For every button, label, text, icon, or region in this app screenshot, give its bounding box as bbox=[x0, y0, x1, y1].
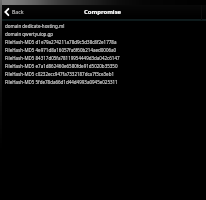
button[interactable]: domain qwertyuiop.gp bbox=[0, 30, 206, 38]
button[interactable]: FileHash-MD5 d1e79a274211a78d9c5d38c8f2e… bbox=[0, 38, 206, 46]
staticText: domain qwertyuiop.gp bbox=[5, 31, 54, 37]
button[interactable]: FileHash-MD5 4e971d8a16057fa6f60b214aed0… bbox=[0, 46, 206, 54]
staticText: FileHash-MD5 4e971d8a16057fa6f60b214aed0… bbox=[5, 47, 117, 53]
staticText: FileHash-MD5 5fde78da66d1d44d4993a0945e0… bbox=[5, 79, 118, 85]
staticText: domain dedicate-hosting.ml bbox=[5, 23, 65, 29]
button[interactable]: Back bbox=[4, 6, 24, 18]
staticText: Compromise bbox=[84, 8, 122, 16]
button[interactable]: domain dedicate-hosting.ml bbox=[0, 22, 206, 30]
button[interactable]: FileHash-MD5 c0232ecc947fa7332187dca7f3c… bbox=[0, 70, 206, 78]
staticText: FileHash-MD5 d1e79a274211a78d9c5d38c8f2e… bbox=[5, 39, 117, 45]
staticText: FileHash-MD5 84317d05fa78119954449d3da04… bbox=[5, 55, 120, 61]
button[interactable]: FileHash-MD5 84317d05fa78119954449d3da04… bbox=[0, 54, 206, 62]
button[interactable]: FileHash-MD5 e7a1d862460e6580fde91d5020b… bbox=[0, 62, 206, 70]
staticText: FileHash-MD5 c0232ecc947fa7332187dca7f3c… bbox=[5, 71, 114, 77]
other: Back bbox=[4, 8, 9, 16]
button[interactable]: FileHash-MD5 5fde78da66d1d44d4993a0945e0… bbox=[0, 78, 206, 86]
staticText: Back bbox=[12, 9, 24, 16]
staticText: FileHash-MD5 e7a1d862460e6580fde91d5020b… bbox=[5, 63, 118, 69]
